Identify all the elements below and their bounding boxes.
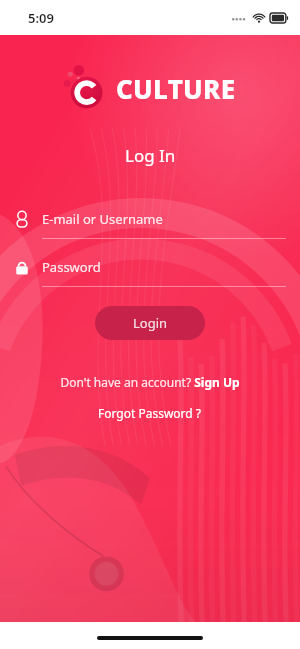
staticText: Don't have an account? Sign Up [60,374,240,390]
staticText: 5:09 [28,9,54,27]
button[interactable]: E-mail or Username [14,210,286,239]
button[interactable]: Password [14,258,286,287]
staticText: E-mail or Username [42,210,163,228]
staticText: Password [42,258,101,276]
staticText: Log In [125,144,176,167]
staticText: CULTURE [116,71,236,106]
button[interactable]: Don't have an account? Sign Up [54,371,246,393]
staticText: Login [133,314,168,332]
button[interactable]: Forgot Password ? [92,402,208,424]
button[interactable]: Login [95,306,205,340]
staticText: Forgot Password ? [98,405,202,421]
